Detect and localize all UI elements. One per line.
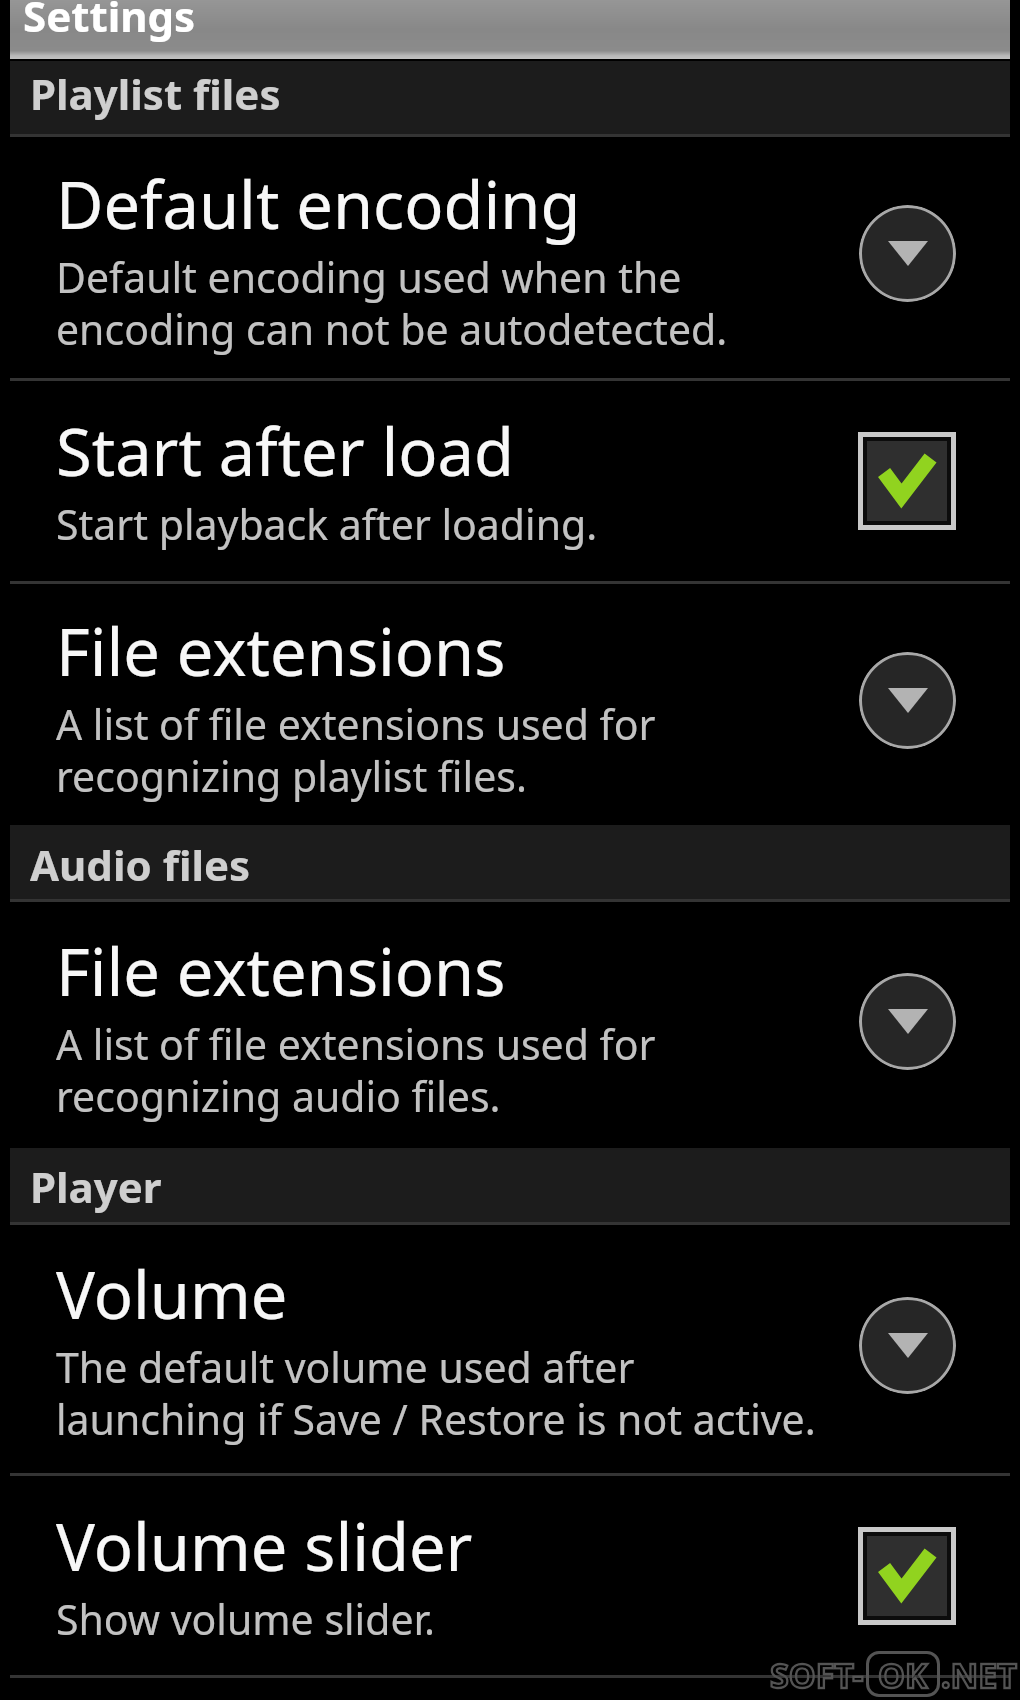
staticText: Show volume slider. — [56, 1591, 435, 1647]
button[interactable]: Volume slider — [0, 1476, 1020, 1675]
button[interactable]: Default encoding — [0, 137, 1020, 378]
button[interactable]: Open list — [859, 652, 956, 749]
staticText: Start playback after loading. — [56, 496, 598, 552]
button[interactable]: File extensions — [0, 584, 1020, 825]
button[interactable]: Open list — [859, 973, 956, 1070]
staticText: Default encoding — [56, 160, 581, 249]
button[interactable]: Volume — [0, 1225, 1020, 1473]
staticText: The default volume used after launching … — [56, 1339, 816, 1447]
staticText: File extensions — [56, 607, 506, 696]
button[interactable]: Checkbox, checked — [867, 1536, 947, 1616]
button[interactable]: File extensions — [0, 902, 1020, 1148]
staticText: Start after load — [56, 407, 515, 496]
staticText: File extensions — [56, 927, 506, 1016]
staticText: Player — [30, 1158, 162, 1215]
button[interactable]: Start after load — [0, 381, 1020, 581]
staticText: A list of file extensions used for recog… — [56, 1016, 656, 1124]
staticText: OK — [878, 1652, 928, 1698]
staticText: A list of file extensions used for recog… — [56, 696, 656, 804]
staticText: Default encoding used when the encoding … — [56, 249, 728, 357]
staticText: Playlist files — [30, 65, 281, 122]
staticText: SOFT- — [770, 1652, 864, 1698]
staticText: Volume — [56, 1250, 288, 1339]
staticText: Audio files — [30, 836, 251, 893]
button[interactable]: Checkbox, checked — [867, 441, 947, 521]
button[interactable]: Open list — [859, 205, 956, 302]
staticText: .NET — [941, 1652, 1017, 1698]
staticText: Volume slider — [56, 1502, 473, 1591]
button[interactable]: Open list — [859, 1297, 956, 1394]
staticText: Settings — [23, 0, 196, 44]
